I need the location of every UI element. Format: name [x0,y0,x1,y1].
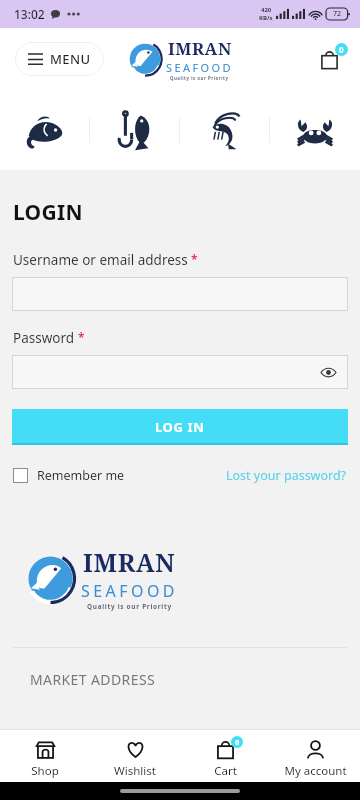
button[interactable]: Cart [312,42,346,76]
button[interactable]: 0 [180,733,270,779]
staticText: Quality is our Priority [170,75,229,81]
staticText: * [191,251,198,267]
staticText: My account [284,763,347,779]
other: Show password [318,362,338,382]
button[interactable]: Show password [12,355,348,389]
staticText: SEAFOOD [81,580,178,602]
button[interactable]: Shop [0,733,90,779]
button[interactable]: Wishlist [90,733,180,779]
button[interactable]: Lost your password? [226,467,347,484]
staticText: MENU [50,50,91,68]
staticText: LOGIN [13,198,83,227]
staticText: 420 [261,6,272,14]
staticText: SEAFOOD [166,60,233,75]
staticText: Lost your password? [226,467,347,484]
staticText: Username or email address [13,251,188,269]
button[interactable]: Fish [0,90,90,170]
staticText: LOG IN [155,418,205,436]
staticText: MARKET ADDRESS [30,670,156,689]
staticText: Password [13,329,75,347]
button[interactable]: LOG IN [12,409,348,445]
staticText: 0 [339,44,344,55]
button[interactable]: MENU [15,42,104,76]
button[interactable] [12,277,348,311]
staticText: IMRAN [83,546,176,580]
staticText: 72 [333,9,342,19]
staticText: KB/s [259,14,273,22]
staticText: IMRAN [168,37,232,60]
button[interactable]: Shrimp [180,90,270,170]
staticText: Cart [214,763,237,779]
button[interactable]: Fishing [90,90,180,170]
button[interactable]: Crab [270,90,360,170]
staticText: * [78,329,85,345]
staticText: 13:02 [14,6,45,22]
button[interactable]: My account [270,733,360,779]
staticText: 0 [235,737,240,747]
staticText: Quality is our Priority [87,602,172,611]
button[interactable]: Remember me [13,467,125,484]
staticText: Remember me [37,467,125,484]
staticText: Wishlist [114,763,156,779]
staticText: Shop [31,763,59,779]
